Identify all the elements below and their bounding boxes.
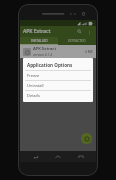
staticText: Details	[27, 93, 40, 98]
staticText: version 4.1.4	[33, 53, 52, 57]
button[interactable]: More options	[85, 28, 93, 36]
staticText: 4 MB	[85, 50, 93, 54]
button[interactable]: Home	[51, 151, 65, 162]
button[interactable]: Search	[75, 27, 84, 36]
staticText: Uninstall	[27, 83, 44, 88]
button[interactable]: Back	[29, 151, 43, 162]
staticText: APK Extract	[33, 46, 56, 52]
button[interactable]: Freeze	[23, 71, 93, 80]
button[interactable]: EXTRACTED	[58, 37, 96, 44]
staticText: Application Options	[27, 62, 73, 68]
button[interactable]: Extract APK	[81, 133, 92, 144]
staticText: APK Extract	[23, 28, 75, 35]
button[interactable]: INSTALLED	[20, 37, 58, 44]
staticText: Freeze	[27, 73, 40, 78]
button[interactable]: Details	[23, 91, 93, 100]
staticText: INSTALLED	[31, 39, 48, 43]
button[interactable]: Uninstall	[23, 81, 93, 90]
button[interactable]: APK Extract	[20, 45, 96, 58]
button[interactable]: Recents	[74, 151, 88, 162]
staticText: EXTRACTED	[68, 39, 86, 43]
